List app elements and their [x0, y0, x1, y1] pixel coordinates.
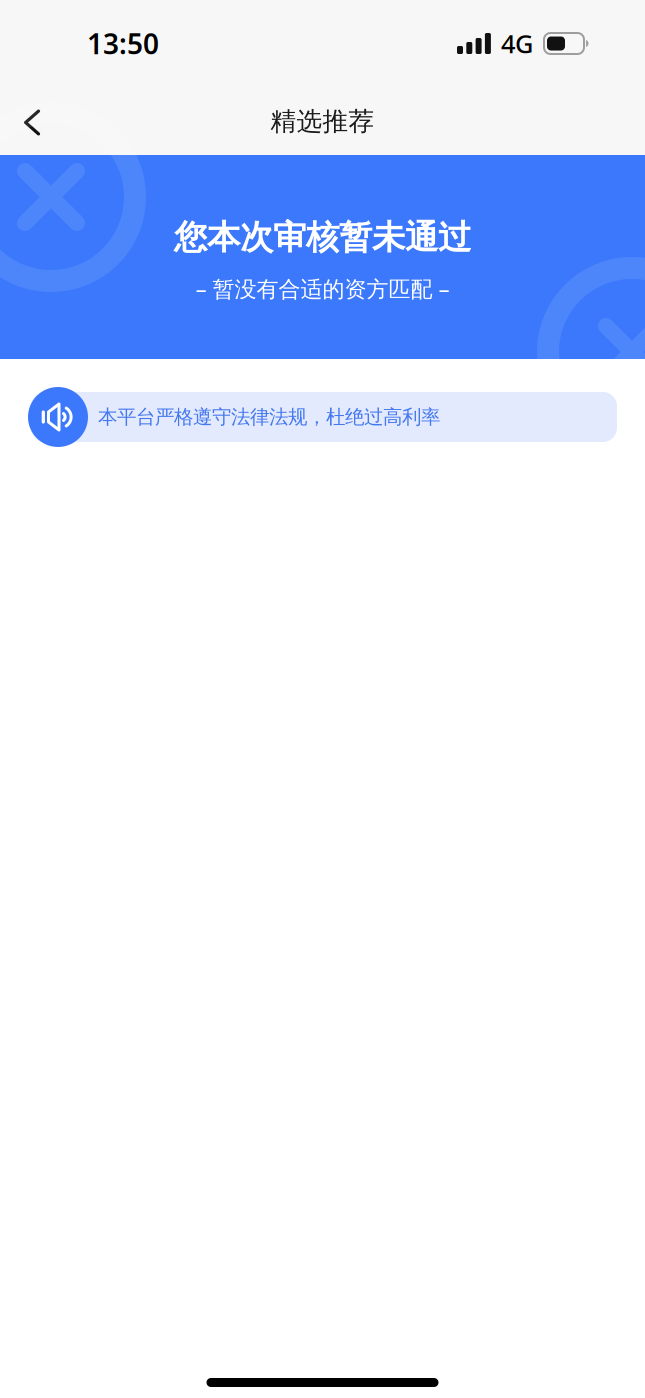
staticText: 您本次审核暂未通过	[174, 217, 471, 258]
button[interactable]: Back	[0, 88, 64, 155]
button[interactable]: 本平台严格遵守法律法规，杜绝过高利率	[0, 387, 645, 447]
staticText: 4G	[501, 27, 533, 60]
staticText: 13:50	[87, 25, 159, 62]
staticText: 精选推荐	[270, 106, 374, 137]
staticText: – 暂没有合适的资方匹配 –	[195, 274, 449, 303]
staticText: 本平台严格遵守法律法规，杜绝过高利率	[98, 405, 440, 429]
